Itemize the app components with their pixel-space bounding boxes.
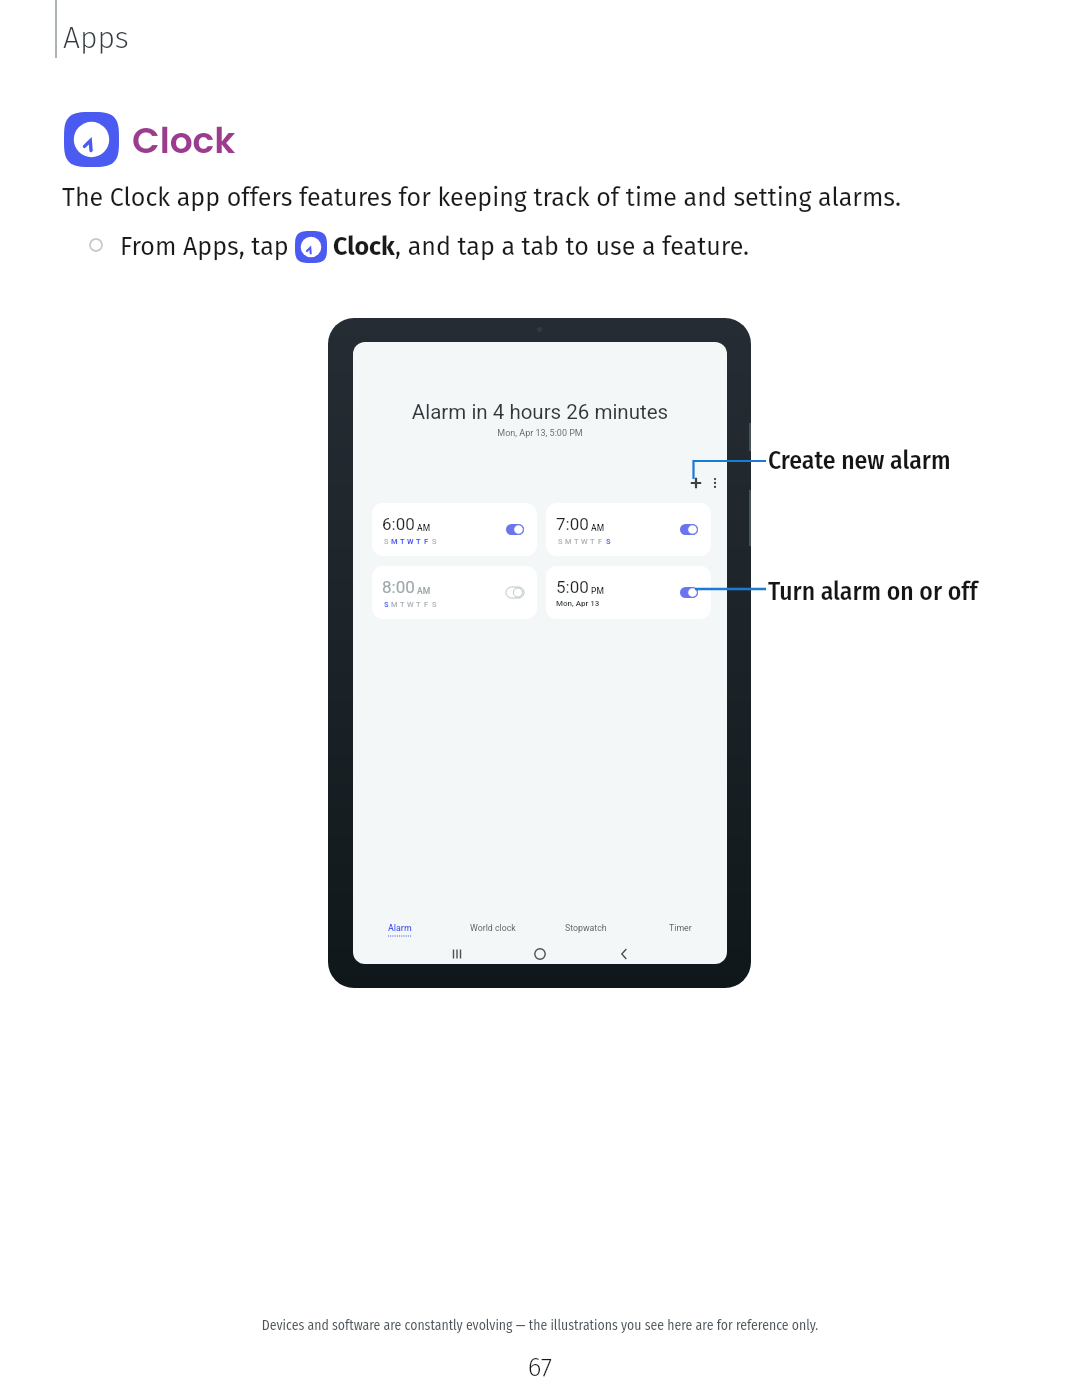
staticText: T bbox=[590, 537, 595, 546]
button[interactable]: Alarm bbox=[353, 923, 446, 937]
staticText: Stopwatch bbox=[565, 923, 607, 933]
staticText: Devices and software are constantly evol… bbox=[0, 1317, 1080, 1333]
staticText: 7:00 bbox=[556, 514, 589, 534]
button[interactable]: 5:00 bbox=[546, 566, 711, 619]
staticText: 67 bbox=[0, 1352, 1080, 1383]
staticText: M bbox=[565, 537, 572, 546]
staticText: AM bbox=[417, 523, 431, 533]
staticText: W bbox=[581, 537, 588, 546]
staticText: T bbox=[416, 537, 421, 546]
staticText: M bbox=[391, 600, 398, 609]
staticText: W bbox=[407, 600, 414, 609]
staticText: AM bbox=[417, 586, 431, 596]
staticText: Clock bbox=[333, 232, 395, 262]
staticText: Clock bbox=[132, 115, 236, 165]
button[interactable]: Back bbox=[606, 942, 642, 964]
staticText: Alarm bbox=[388, 923, 412, 933]
staticText: S bbox=[606, 537, 611, 546]
button[interactable]: Turn alarm on or off bbox=[680, 524, 698, 535]
staticText: M bbox=[391, 537, 398, 546]
staticText: S bbox=[384, 537, 389, 546]
button[interactable]: Stopwatch bbox=[539, 923, 633, 933]
staticText: S bbox=[432, 537, 437, 546]
staticText: The Clock app offers features for keepin… bbox=[62, 183, 902, 213]
staticText: World clock bbox=[470, 923, 516, 933]
staticText: F bbox=[424, 600, 429, 609]
staticText: F bbox=[424, 537, 429, 546]
staticText: F bbox=[598, 537, 603, 546]
staticText: , and tap a tab to use a feature. bbox=[395, 232, 750, 262]
button[interactable]: 8:00 bbox=[372, 566, 537, 619]
staticText: Alarm in 4 hours 26 minutes bbox=[353, 400, 727, 424]
staticText: Apps bbox=[63, 20, 129, 56]
button[interactable]: Turn alarm on or off bbox=[680, 587, 698, 598]
button[interactable]: More options bbox=[704, 472, 726, 494]
button[interactable]: 7:00 bbox=[546, 503, 711, 556]
staticText: T bbox=[400, 537, 405, 546]
button[interactable]: Recent apps bbox=[439, 942, 475, 964]
staticText: Mon, Apr 13 bbox=[556, 599, 600, 608]
staticText: 6:00 bbox=[382, 514, 415, 534]
staticText: Mon, Apr 13, 5:00 PM bbox=[353, 428, 727, 439]
button[interactable]: Home bbox=[522, 942, 558, 964]
button[interactable]: 6:00 bbox=[372, 503, 537, 556]
staticText: T bbox=[416, 600, 421, 609]
staticText: 5:00 bbox=[556, 577, 589, 597]
staticText: T bbox=[400, 600, 405, 609]
staticText: AM bbox=[591, 523, 605, 533]
staticText: T bbox=[574, 537, 579, 546]
button[interactable]: Turn alarm on or off bbox=[506, 524, 524, 535]
staticText: W bbox=[407, 537, 414, 546]
staticText: Turn alarm on or off bbox=[768, 576, 978, 607]
staticText: Timer bbox=[669, 923, 692, 933]
button[interactable]: Create new alarm bbox=[685, 472, 707, 494]
button[interactable]: Timer bbox=[633, 923, 727, 933]
staticText: PM bbox=[591, 586, 604, 596]
button[interactable]: World clock bbox=[446, 923, 539, 933]
staticText: 8:00 bbox=[382, 577, 415, 597]
button[interactable]: Turn alarm on or off bbox=[506, 587, 524, 598]
staticText: S bbox=[432, 600, 437, 609]
staticText: S bbox=[384, 600, 389, 609]
staticText: S bbox=[558, 537, 563, 546]
staticText: Create new alarm bbox=[768, 445, 951, 476]
staticText: From Apps, tap bbox=[120, 232, 289, 262]
